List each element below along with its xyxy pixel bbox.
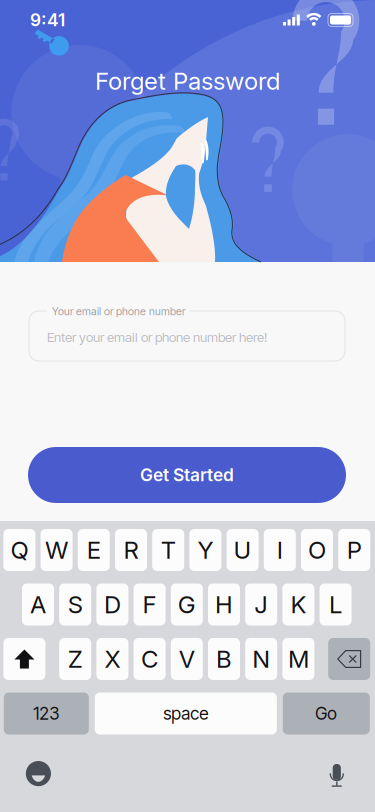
staticText: 123	[33, 703, 59, 724]
button[interactable]: O	[301, 529, 333, 571]
staticText: space	[163, 703, 208, 724]
staticText: T	[161, 535, 176, 564]
button[interactable]: E	[78, 529, 110, 571]
staticText: L	[329, 590, 342, 619]
button[interactable]: B	[208, 638, 240, 680]
button[interactable]: N	[245, 638, 277, 680]
staticText: I	[277, 535, 283, 564]
staticText: Z	[68, 644, 83, 673]
button[interactable]: R	[115, 529, 147, 571]
staticText: Your email or phone number	[52, 305, 185, 318]
button[interactable]: J	[245, 583, 277, 625]
staticText: S	[68, 590, 83, 619]
button[interactable]: G	[171, 583, 203, 625]
button[interactable]: L	[320, 583, 352, 625]
staticText: 9:41	[30, 9, 65, 30]
button[interactable]: space	[95, 692, 277, 734]
button[interactable]: X	[96, 638, 128, 680]
button[interactable]: Y	[189, 529, 221, 571]
button[interactable]: Get Started	[28, 447, 346, 503]
button[interactable]: M	[282, 638, 314, 680]
staticText: U	[234, 535, 252, 564]
button[interactable]: Delete	[328, 638, 370, 680]
staticText: C	[141, 644, 158, 673]
button[interactable]: F	[134, 583, 166, 625]
button[interactable]: C	[134, 638, 166, 680]
button[interactable]: Shift	[3, 638, 45, 680]
staticText: G	[178, 590, 196, 619]
staticText: H	[215, 590, 233, 619]
button[interactable]: I	[264, 529, 296, 571]
button[interactable]: K	[282, 583, 314, 625]
button[interactable]: Go	[283, 692, 370, 734]
button[interactable]: D	[96, 583, 128, 625]
staticText: Go	[315, 703, 337, 724]
staticText: J	[254, 590, 268, 619]
button[interactable]: A	[22, 583, 54, 625]
staticText: N	[252, 644, 270, 673]
staticText: V	[179, 644, 195, 673]
staticText: F	[143, 590, 157, 619]
staticText: Q	[10, 535, 28, 564]
button[interactable]: H	[208, 583, 240, 625]
button[interactable]: 123	[4, 692, 89, 734]
staticText: Forget Password	[95, 66, 280, 95]
staticText: R	[123, 535, 138, 564]
staticText: Enter your email or phone number here!	[47, 329, 267, 345]
button[interactable]: S	[59, 583, 91, 625]
staticText: Y	[197, 535, 213, 564]
button[interactable]: U	[227, 529, 259, 571]
staticText: W	[45, 535, 68, 564]
staticText: P	[347, 535, 362, 564]
staticText: O	[308, 535, 326, 564]
button[interactable]: V	[171, 638, 203, 680]
staticText: D	[104, 590, 121, 619]
button[interactable]: P	[338, 529, 370, 571]
staticText: M	[288, 644, 309, 673]
button[interactable]: Q	[3, 529, 35, 571]
button[interactable]: W	[41, 529, 73, 571]
button[interactable]: Z	[59, 638, 91, 680]
staticText: K	[290, 590, 306, 619]
staticText: X	[104, 644, 120, 673]
staticText: A	[30, 590, 46, 619]
staticText: Get Started	[140, 464, 234, 485]
button[interactable]: T	[152, 529, 184, 571]
staticText: B	[216, 644, 232, 673]
staticText: E	[87, 535, 101, 564]
